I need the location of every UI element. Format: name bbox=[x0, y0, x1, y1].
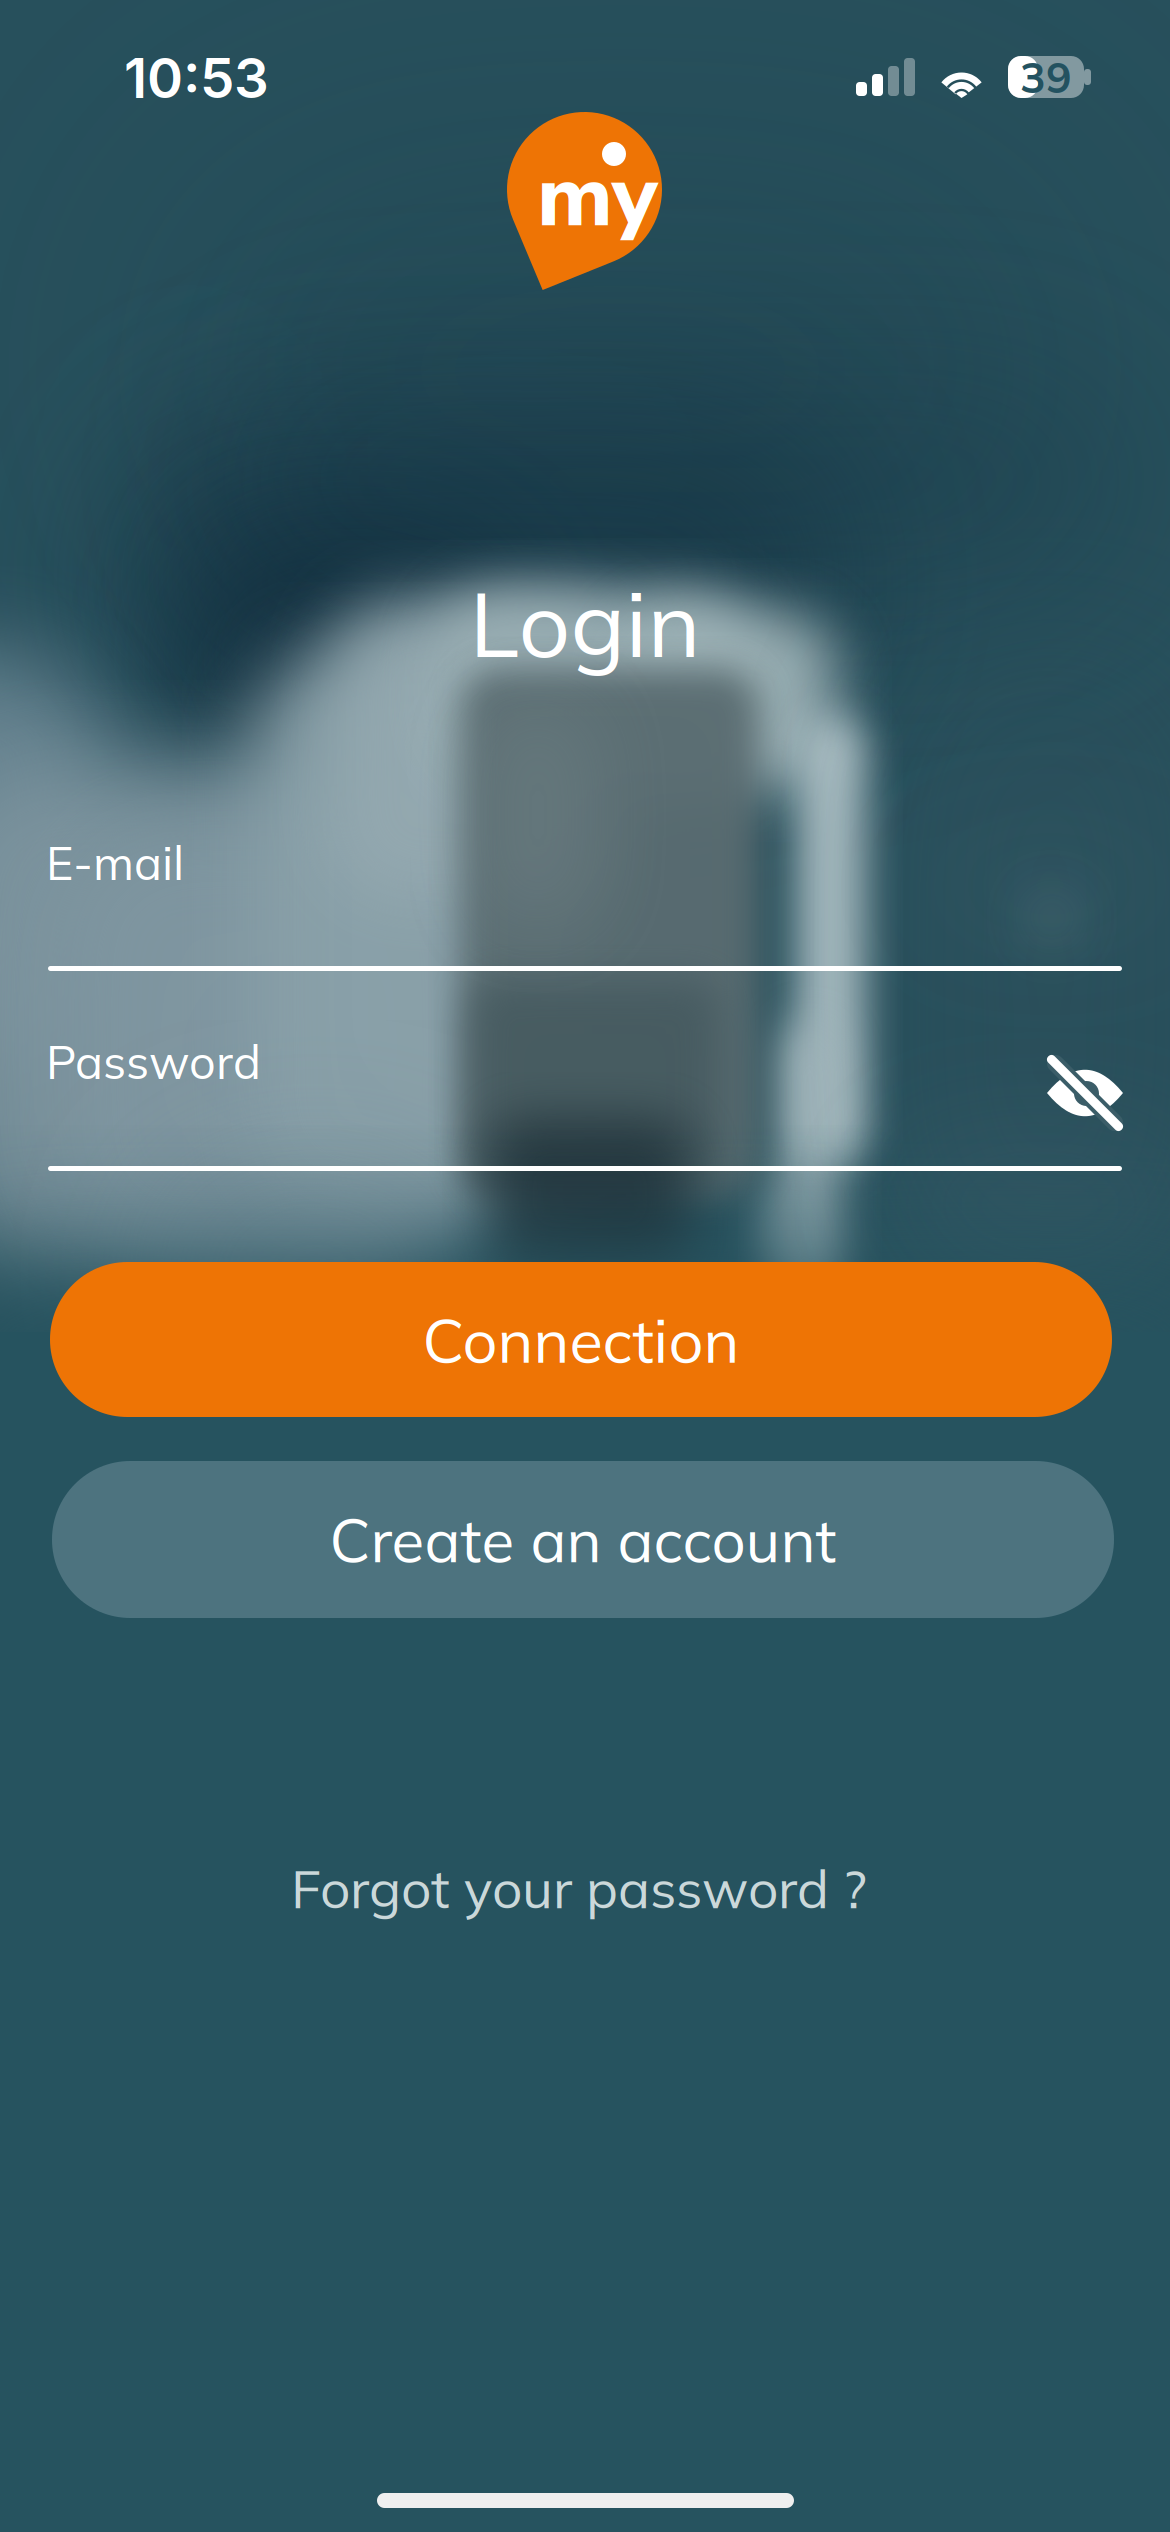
staticText: my bbox=[537, 139, 657, 255]
staticText: Forgot your password ? bbox=[291, 1854, 867, 1921]
staticText: E-mail bbox=[46, 833, 184, 892]
staticText: 10:53 bbox=[124, 45, 269, 111]
staticText: Create an account bbox=[329, 1502, 836, 1577]
button[interactable]: Connection bbox=[50, 1262, 1112, 1417]
button[interactable]: Show password bbox=[1031, 1039, 1139, 1147]
button[interactable]: Forgot your password ? bbox=[219, 1843, 939, 1933]
staticText: Login bbox=[469, 566, 700, 680]
staticText: Password bbox=[46, 1032, 261, 1091]
staticText: Connection bbox=[422, 1301, 739, 1378]
button[interactable]: Create an account bbox=[52, 1461, 1114, 1618]
staticText: 39 bbox=[1020, 50, 1072, 104]
